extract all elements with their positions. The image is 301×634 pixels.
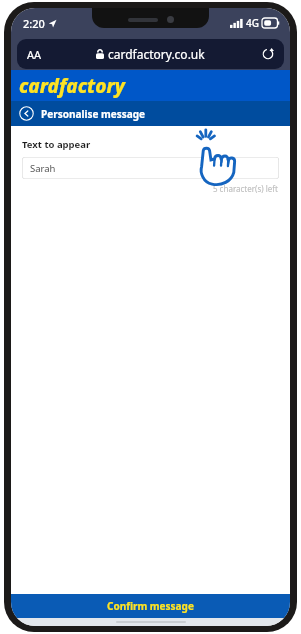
staticText: cardfactory.co.uk xyxy=(108,46,205,62)
button[interactable]: cardfactory xyxy=(19,73,125,99)
button[interactable]: Confirm message xyxy=(11,594,290,618)
staticText: Text to appear xyxy=(22,138,91,151)
staticText: Confirm message xyxy=(107,599,194,613)
button[interactable]: Reload page xyxy=(260,46,276,62)
staticText: Sarah xyxy=(30,162,56,175)
staticText: AA xyxy=(27,47,42,62)
button[interactable]: AA xyxy=(17,39,284,69)
staticText: 2:20 xyxy=(23,16,45,31)
staticText: 4G xyxy=(246,16,259,30)
staticText: 5 character(s) left xyxy=(11,183,278,194)
button[interactable]: Back xyxy=(19,106,34,121)
staticText: Personalise message xyxy=(41,107,146,121)
button[interactable]: Sarah xyxy=(22,157,279,179)
